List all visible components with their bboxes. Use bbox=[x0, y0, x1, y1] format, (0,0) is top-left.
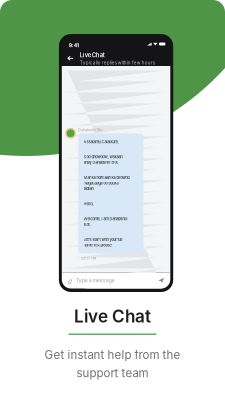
staticText: 05:37 PM bbox=[81, 256, 96, 260]
staticText: Welcome, I am Dahabshiil Bot. bbox=[83, 217, 127, 227]
staticText: Typically replies within few hours bbox=[80, 60, 155, 65]
staticText: Marka hore aan ka bilowno magacaaga oo b… bbox=[83, 175, 129, 191]
staticText: Let's start with your full name first pl… bbox=[83, 237, 122, 247]
staticText: 9:41 bbox=[69, 42, 79, 48]
staticText: Live Chat bbox=[80, 51, 105, 59]
staticText: Live Chat bbox=[74, 306, 151, 327]
staticText: Assalamu Calaikum, bbox=[83, 139, 118, 144]
staticText: support team bbox=[76, 366, 148, 380]
staticText: Soo dhowoow, waxaan ahay Dahabshiil Bot. bbox=[83, 155, 122, 165]
button[interactable]: Send bbox=[158, 278, 164, 283]
staticText: Dahabshiil Bot bbox=[78, 128, 102, 132]
staticText: Hello, bbox=[83, 201, 93, 206]
button[interactable]: Attach file bbox=[67, 278, 72, 283]
staticText: Get instant help from the bbox=[44, 348, 180, 362]
button[interactable]: Back bbox=[67, 56, 73, 61]
staticText: Type a message bbox=[76, 277, 115, 283]
